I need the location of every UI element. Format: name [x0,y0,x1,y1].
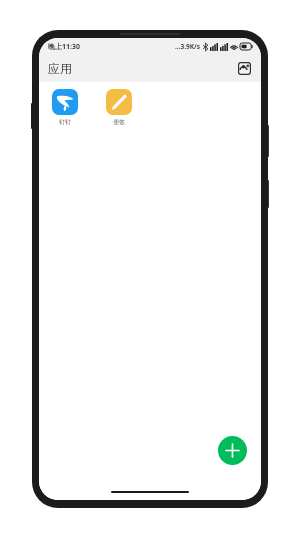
staticText: 晚上11:30 [48,42,80,52]
button[interactable]: 钉钉 [49,89,81,126]
button[interactable]: Add [218,436,247,465]
staticText: 应用 [48,61,72,76]
staticText: ...3.9K/s [175,42,201,51]
staticText: 钉钉 [59,118,71,126]
staticText: 便签 [113,118,125,126]
button[interactable]: 便签 [103,89,135,126]
button[interactable]: Add account [235,59,254,78]
